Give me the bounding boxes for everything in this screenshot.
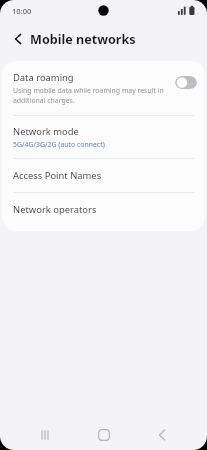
button[interactable]: Recent apps (32, 422, 58, 448)
staticText: Mobile networks (30, 31, 136, 48)
staticText: Network mode (13, 125, 79, 138)
button[interactable]: Back (8, 29, 28, 49)
button[interactable]: Access Point Names (2, 159, 205, 192)
button[interactable]: Data roaming toggle, off (175, 76, 197, 89)
staticText: 10:00 (12, 6, 32, 16)
staticText: Using mobile data while roaming may resu… (13, 86, 171, 105)
staticText: Network operators (13, 203, 97, 216)
button[interactable]: Home (91, 422, 117, 448)
button[interactable]: Back (149, 422, 175, 448)
button[interactable]: Network operators (2, 193, 205, 226)
staticText: 5G/4G/3G/2G (auto connect) (13, 140, 105, 149)
button[interactable]: Network mode (2, 116, 205, 158)
staticText: Access Point Names (13, 169, 102, 182)
staticText: Data roaming (13, 71, 74, 84)
button[interactable]: Data roaming (2, 61, 205, 115)
